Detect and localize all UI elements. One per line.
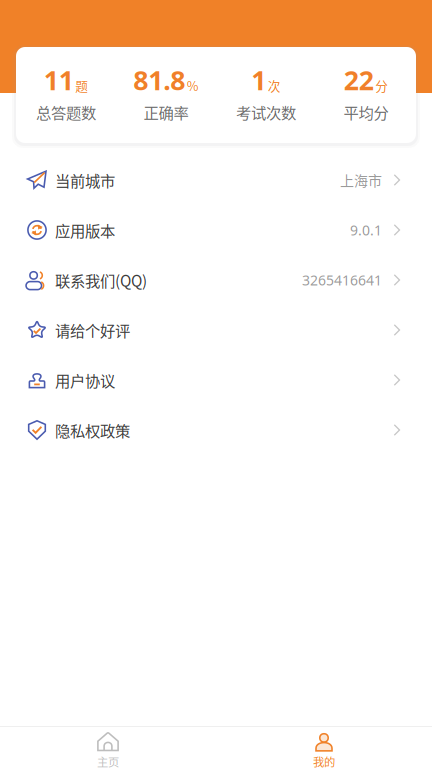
button[interactable]: 主页	[0, 727, 216, 768]
staticText: 平均分	[343, 101, 388, 123]
staticText: 正确率	[143, 101, 188, 123]
staticText: 总答题数	[36, 101, 96, 123]
staticText: 请给个好评	[55, 319, 130, 341]
staticText: 次	[268, 76, 281, 95]
button[interactable]: 当前城市	[0, 155, 432, 205]
staticText: 题	[75, 76, 88, 95]
staticText: 分	[375, 76, 388, 95]
staticText: 9.0.1	[350, 220, 382, 240]
staticText: 当前城市	[55, 169, 115, 191]
button[interactable]: 联系我们(QQ)	[0, 255, 432, 305]
button[interactable]: 请给个好评	[0, 305, 432, 355]
staticText: 主页	[97, 753, 119, 768]
staticText: %	[187, 76, 199, 95]
button[interactable]: 用户协议	[0, 355, 432, 405]
button[interactable]: 我的	[216, 727, 432, 768]
staticText: 3265416641	[302, 270, 382, 290]
staticText: 用户协议	[55, 369, 115, 391]
staticText: 1	[251, 62, 266, 98]
staticText: 上海市	[340, 170, 382, 190]
staticText: 应用版本	[55, 219, 115, 241]
staticText: 我的	[313, 753, 335, 768]
button[interactable]: 隐私权政策	[0, 405, 432, 455]
staticText: 11	[44, 62, 74, 98]
staticText: 联系我们(QQ)	[55, 269, 147, 291]
staticText: 81.8	[133, 62, 185, 98]
button[interactable]: 应用版本	[0, 205, 432, 255]
staticText: 考试次数	[236, 101, 296, 123]
staticText: 隐私权政策	[55, 419, 130, 441]
staticText: 22	[344, 62, 374, 98]
